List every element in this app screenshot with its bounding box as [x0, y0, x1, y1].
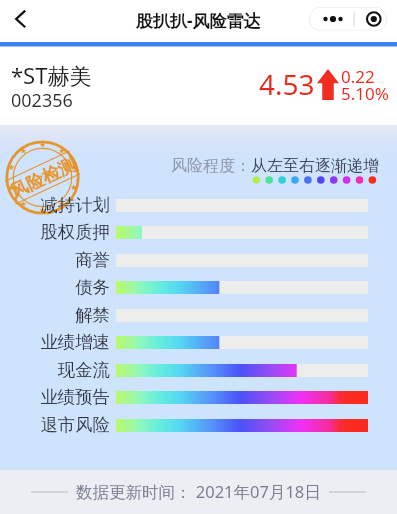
staticText: 股权质押	[0, 221, 110, 243]
button[interactable]: 债务	[0, 274, 397, 301]
staticText: 风险检测	[7, 153, 79, 203]
staticText: 风险程度：	[171, 156, 251, 176]
staticText: 股扒扒-风险雷达	[136, 9, 261, 32]
staticText: 债务	[0, 276, 110, 298]
staticText: 002356	[11, 88, 73, 113]
staticText: 解禁	[0, 304, 110, 326]
staticText: 5.10%	[341, 82, 389, 105]
staticText: 退市风险	[0, 414, 110, 436]
staticText: 现金流	[0, 359, 110, 381]
button[interactable]: 业绩预告	[0, 384, 397, 411]
button[interactable]: 解禁	[0, 302, 397, 329]
staticText: 减持计划	[0, 194, 110, 216]
staticText: 4.53	[259, 65, 315, 103]
staticText: 商誉	[0, 249, 110, 271]
button[interactable]: Back	[4, 4, 36, 36]
button[interactable]: 退市风险	[0, 412, 397, 439]
button[interactable]: 股权质押	[0, 219, 397, 246]
staticText: 从左至右逐渐递增	[251, 156, 379, 176]
staticText: 业绩增速	[0, 331, 110, 353]
staticText: 0.22	[341, 65, 375, 88]
staticText: 数据更新时间： 2021年07月18日	[76, 480, 321, 503]
button[interactable]: 商誉	[0, 247, 397, 274]
button[interactable]: 减持计划	[0, 192, 397, 219]
button[interactable]: 业绩增速	[0, 329, 397, 356]
button[interactable]: 现金流	[0, 357, 397, 384]
staticText: 业绩预告	[0, 386, 110, 408]
button[interactable]: More options	[309, 7, 387, 31]
staticText: *ST赫美	[11, 60, 92, 90]
